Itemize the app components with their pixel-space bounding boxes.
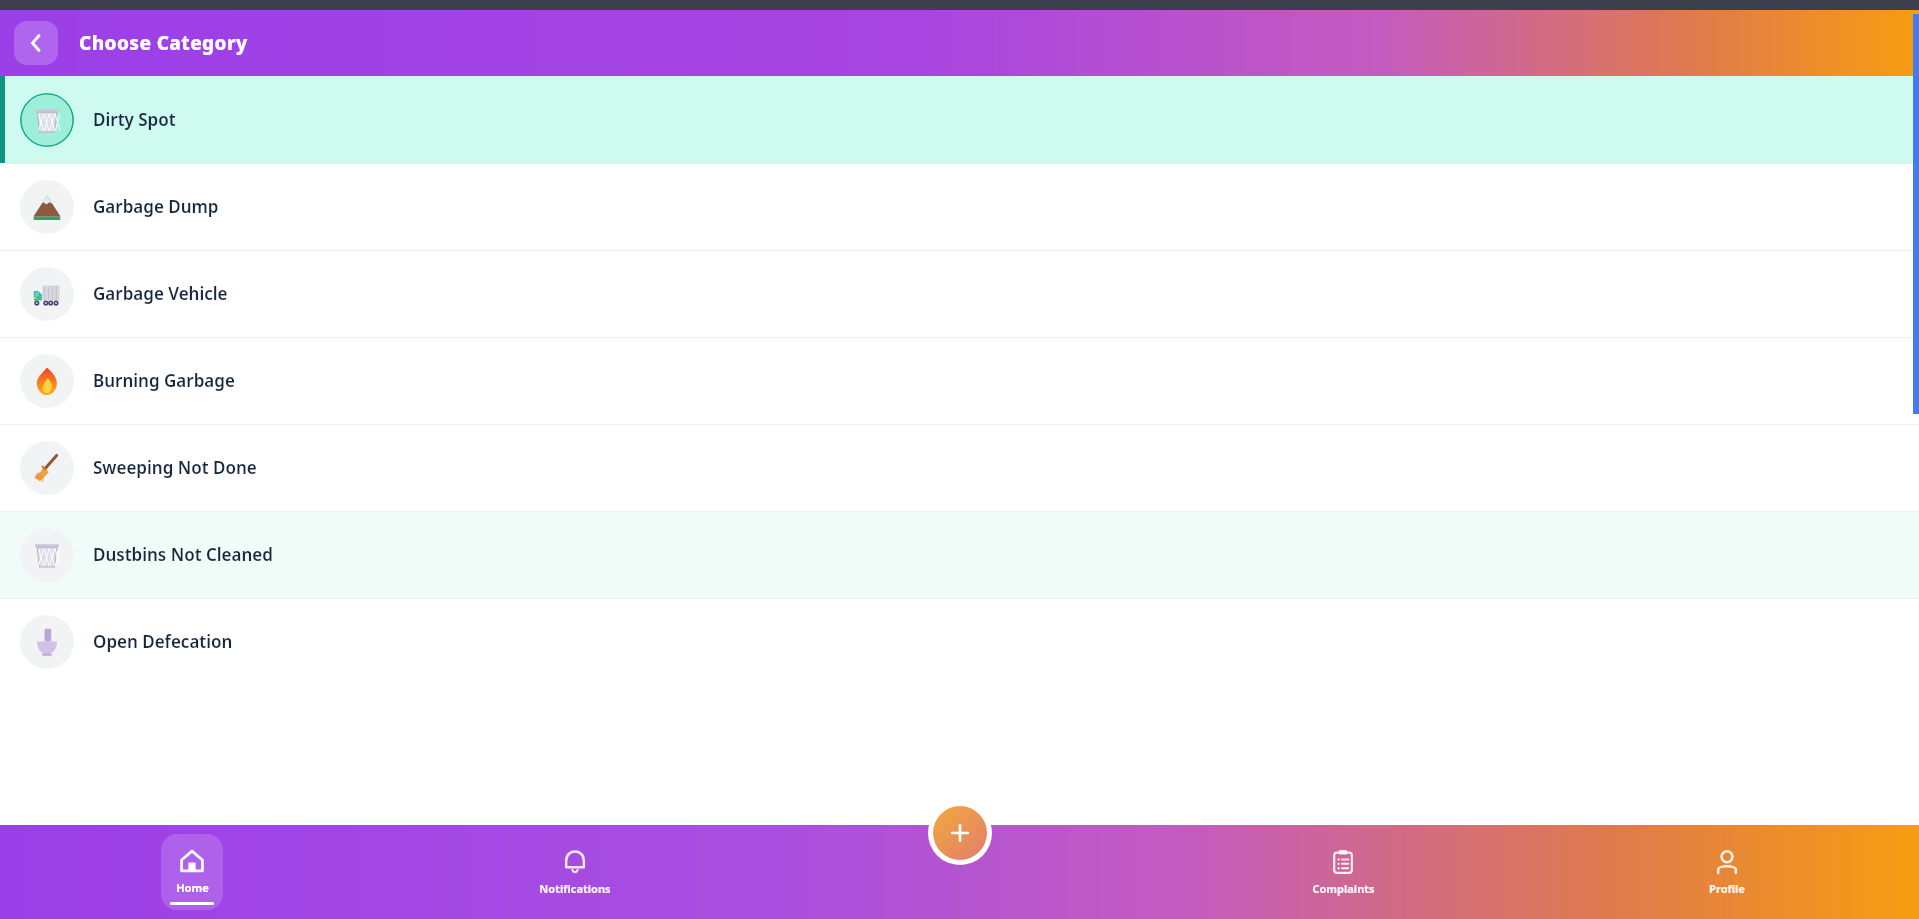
staticText: Complaints: [1312, 881, 1375, 896]
button[interactable]: Home: [161, 834, 223, 910]
staticText: Profile: [1709, 881, 1745, 896]
staticText: Choose Category: [79, 30, 248, 56]
staticText: Dirty Spot: [93, 108, 176, 131]
staticText: Burning Garbage: [93, 369, 235, 392]
staticText: Garbage Vehicle: [93, 282, 228, 305]
button[interactable]: Dirty Spot: [0, 76, 1919, 163]
staticText: Notifications: [539, 881, 611, 896]
button[interactable]: Garbage Dump: [0, 163, 1919, 250]
button[interactable]: Dustbins Not Cleaned: [0, 511, 1919, 598]
button[interactable]: Burning Garbage: [0, 337, 1919, 424]
button[interactable]: Complaints: [1295, 837, 1391, 907]
button[interactable]: Notifications: [527, 837, 623, 907]
button[interactable]: Add complaint: [933, 806, 987, 860]
button[interactable]: Back: [14, 21, 58, 65]
button[interactable]: Sweeping Not Done: [0, 424, 1919, 511]
button[interactable]: Garbage Vehicle: [0, 250, 1919, 337]
staticText: Sweeping Not Done: [93, 456, 257, 479]
staticText: Garbage Dump: [93, 195, 219, 218]
staticText: Open Defecation: [93, 630, 233, 653]
button[interactable]: Open Defecation: [0, 598, 1919, 685]
button[interactable]: Profile: [1679, 837, 1775, 907]
staticText: Dustbins Not Cleaned: [93, 543, 273, 566]
staticText: Home: [176, 880, 209, 895]
